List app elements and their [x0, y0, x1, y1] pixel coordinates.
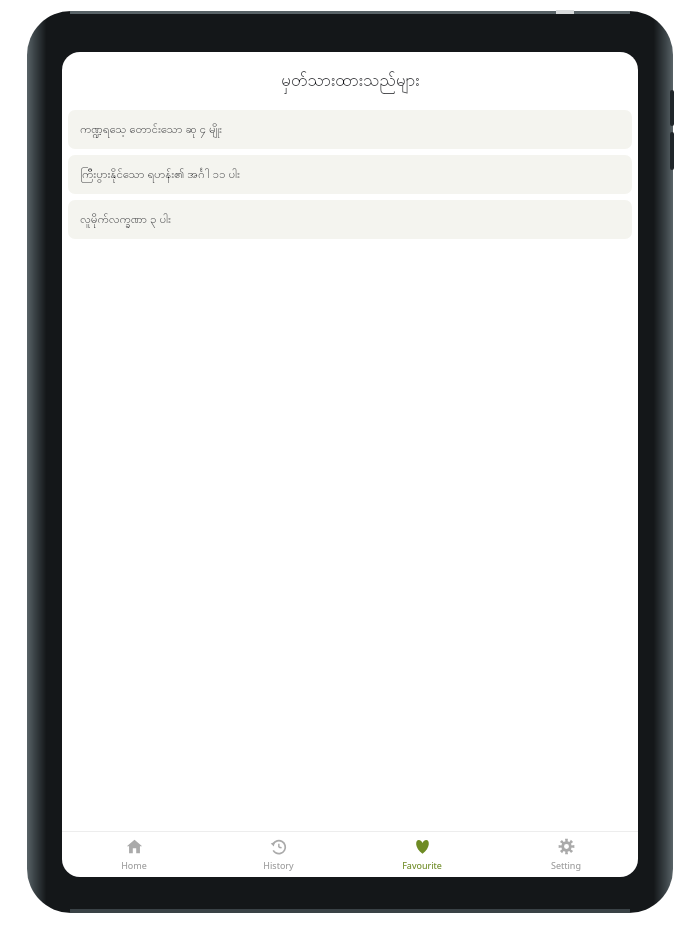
staticText: ကဏ္ဍရသေ့ တောင်းသော ဆု ၄ မျိုး	[80, 121, 222, 139]
button[interactable]: လူမိုက်လက္ခဏာ ၃ ပါး	[68, 200, 632, 239]
button[interactable]: ကဏ္ဍရသေ့ တောင်းသော ဆု ၄ မျိုး	[68, 110, 632, 149]
staticText: History	[263, 859, 294, 871]
staticText: မှတ်သားထားသည်များ	[281, 69, 420, 94]
button[interactable]: History	[206, 832, 350, 877]
staticText: Home	[121, 859, 147, 871]
button[interactable]: Setting	[494, 832, 638, 877]
staticText: လူမိုက်လက္ခဏာ ၃ ပါး	[80, 211, 171, 229]
button[interactable]: Favourite	[350, 832, 494, 877]
button[interactable]: ကြီးပွားနိုင်သော ရဟန်း၏ အင်္ဂါ ၁၁ ပါး	[68, 155, 632, 194]
button[interactable]: Home	[62, 832, 206, 877]
staticText: Favourite	[402, 859, 442, 871]
staticText: ကြီးပွားနိုင်သော ရဟန်း၏ အင်္ဂါ ၁၁ ပါး	[80, 166, 240, 184]
staticText: Setting	[551, 859, 581, 871]
